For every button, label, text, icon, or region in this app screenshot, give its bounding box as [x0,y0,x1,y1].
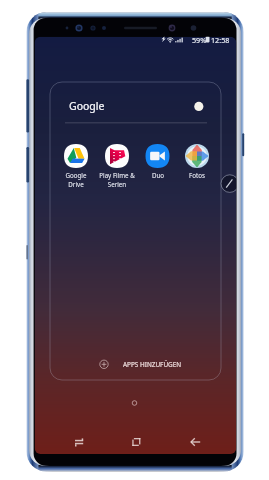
button[interactable]: Play Filme & Serien [97,142,137,189]
staticText: Fotos [177,171,217,179]
button[interactable]: Back [182,434,213,454]
button[interactable]: Recents [60,434,91,454]
button[interactable]: Duo [138,142,178,189]
staticText: APPS HINZUFÜGEN [123,360,182,369]
staticText: Google Drive [56,171,96,189]
staticText: Duo [138,171,178,179]
staticText: Google [69,99,105,113]
button[interactable]: APPS HINZUFÜGEN [96,357,182,372]
staticText: 12:58 [211,35,230,45]
button[interactable]: Google [50,82,221,122]
staticText: 59% [192,35,207,45]
button[interactable]: Google Drive [56,142,96,189]
button[interactable]: Fotos [177,142,217,189]
button[interactable]: Home [120,434,151,454]
staticText: Play Filme & Serien [97,171,137,189]
